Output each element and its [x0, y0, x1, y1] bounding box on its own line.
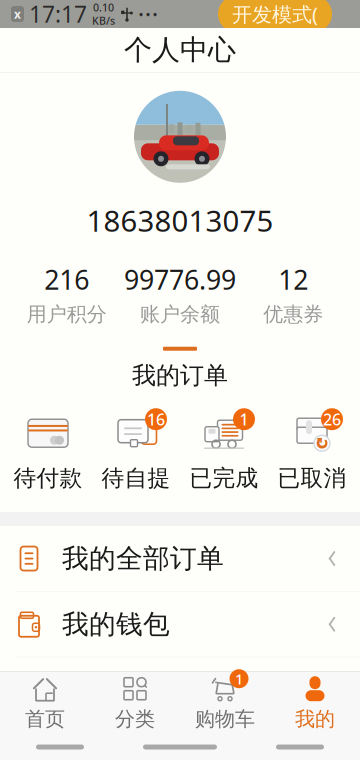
- staticText: 我的全部订单: [62, 542, 224, 575]
- staticText: 购物车: [195, 707, 255, 731]
- staticText: 已取消: [277, 464, 346, 492]
- staticText: 我的优惠券: [62, 674, 197, 706]
- staticText: 216: [44, 262, 89, 297]
- staticText: 个人中心: [124, 33, 236, 67]
- staticText: 待自提: [101, 464, 170, 492]
- staticText: 1: [239, 409, 248, 430]
- staticText: 首页: [25, 707, 65, 731]
- button[interactable]: 我的: [270, 669, 360, 737]
- button[interactable]: 分类: [90, 669, 180, 737]
- staticText: 12: [278, 262, 308, 297]
- staticText: ↻: [316, 435, 328, 451]
- staticText: 待付款: [13, 464, 82, 492]
- staticText: KB/s: [92, 13, 115, 28]
- staticText: 26: [323, 409, 341, 430]
- button[interactable]: 1: [180, 408, 268, 496]
- staticText: 用户积分: [27, 302, 107, 327]
- button[interactable]: 我的收藏: [0, 723, 360, 760]
- staticText: 我的订单: [132, 361, 228, 390]
- staticText: 账户余额: [140, 302, 220, 327]
- staticText: 0.10: [93, 0, 114, 14]
- staticText: 开发模式(: [232, 1, 318, 27]
- staticText: 分类: [115, 707, 155, 731]
- button[interactable]: 我的钱包: [0, 592, 360, 657]
- staticText: 17:17: [29, 0, 87, 29]
- staticText: 99776.99: [124, 262, 236, 297]
- staticText: 我的: [295, 707, 335, 731]
- staticText: 1: [235, 669, 243, 688]
- staticText: 18638013075: [86, 201, 273, 240]
- button[interactable]: 首页: [0, 669, 90, 737]
- staticText: 我的收藏: [62, 739, 170, 760]
- button[interactable]: Profile photo: [134, 91, 226, 183]
- button[interactable]: 16: [92, 408, 180, 496]
- staticText: 100: [285, 6, 306, 22]
- staticText: 优惠券: [263, 302, 323, 327]
- button[interactable]: 我的优惠券: [0, 657, 360, 723]
- button[interactable]: 我的全部订单: [0, 526, 360, 592]
- staticText: x: [14, 6, 21, 22]
- button[interactable]: 待付款: [4, 408, 92, 496]
- button[interactable]: 1: [180, 669, 270, 737]
- staticText: 我的钱包: [62, 608, 170, 641]
- staticText: 已完成: [189, 464, 258, 492]
- staticText: 16: [147, 409, 165, 430]
- button[interactable]: ↻: [268, 408, 356, 496]
- staticText: • • •: [139, 7, 157, 21]
